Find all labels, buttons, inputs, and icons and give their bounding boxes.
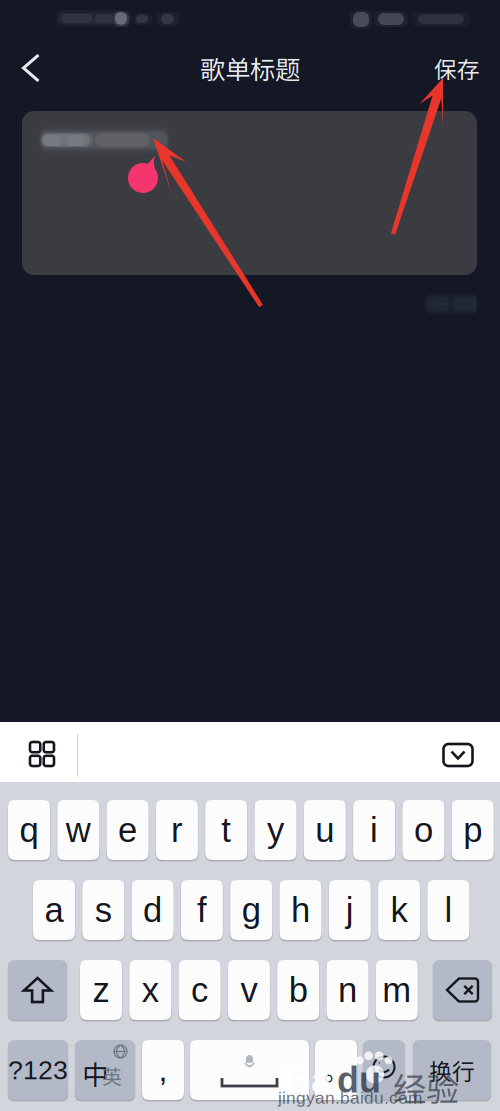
- staticText: v: [240, 971, 257, 1009]
- staticText: n: [338, 971, 357, 1009]
- button[interactable]: o: [402, 800, 444, 860]
- button[interactable]: x: [129, 960, 171, 1020]
- button[interactable]: Back: [0, 40, 62, 96]
- staticText: l: [444, 891, 452, 929]
- button[interactable]: e: [107, 800, 149, 860]
- button[interactable]: s: [82, 880, 124, 940]
- button[interactable]: u: [304, 800, 346, 860]
- button[interactable]: p: [452, 800, 494, 860]
- staticText: du: [337, 1060, 381, 1100]
- staticText: u: [315, 811, 334, 849]
- button[interactable]: y: [254, 800, 296, 860]
- button[interactable]: ,: [142, 1040, 184, 1100]
- button[interactable]: j: [329, 880, 371, 940]
- staticText: p: [463, 811, 482, 849]
- staticText: o: [414, 811, 433, 849]
- staticText: x: [142, 971, 159, 1009]
- staticText: q: [19, 811, 38, 849]
- button[interactable]: c: [179, 960, 221, 1020]
- button[interactable]: m: [376, 960, 418, 1020]
- staticText: k: [391, 891, 408, 929]
- button[interactable]: Keyboard layouts: [0, 722, 84, 782]
- staticText: ,: [158, 1052, 167, 1088]
- staticText: 中: [82, 1054, 109, 1093]
- staticText: ?123: [8, 1055, 68, 1085]
- button[interactable]: 保存: [414, 40, 500, 96]
- button[interactable]: h: [279, 880, 321, 940]
- button[interactable]: t: [205, 800, 247, 860]
- button[interactable]: i: [353, 800, 395, 860]
- button[interactable]: d: [132, 880, 174, 940]
- staticText: s: [95, 891, 112, 929]
- button[interactable]: l: [427, 880, 469, 940]
- staticText: 经验: [393, 1063, 459, 1111]
- staticText: j: [346, 891, 354, 929]
- button[interactable]: n: [326, 960, 368, 1020]
- staticText: t: [221, 811, 231, 849]
- button[interactable]: Dismiss keyboard: [416, 722, 500, 782]
- button[interactable]: b: [277, 960, 319, 1020]
- staticText: Bai: [285, 1060, 341, 1100]
- staticText: y: [267, 811, 284, 849]
- button[interactable]: a: [33, 880, 75, 940]
- staticText: w: [66, 811, 91, 849]
- button[interactable]: g: [230, 880, 272, 940]
- button[interactable]: Emoji: [363, 1040, 405, 1100]
- button[interactable]: 。: [315, 1040, 357, 1100]
- staticText: a: [44, 891, 63, 929]
- button[interactable]: f: [181, 880, 223, 940]
- button[interactable]: Switch language: [75, 1040, 135, 1100]
- staticText: 。: [324, 1053, 348, 1087]
- staticText: 换行: [429, 1054, 475, 1086]
- button[interactable]: z: [80, 960, 122, 1020]
- staticText: c: [191, 971, 208, 1009]
- staticText: jingyan.baidu.com: [278, 1088, 422, 1107]
- staticText: 英: [102, 1061, 122, 1090]
- staticText: d: [143, 891, 162, 929]
- staticText: h: [291, 891, 310, 929]
- button[interactable]: Shift: [8, 960, 67, 1020]
- staticText: b: [289, 971, 308, 1009]
- staticText: r: [171, 811, 183, 849]
- staticText: 保存: [434, 52, 480, 84]
- button[interactable]: q: [8, 800, 50, 860]
- staticText: e: [118, 811, 137, 849]
- staticText: g: [242, 891, 261, 929]
- button[interactable]: Delete: [433, 960, 492, 1020]
- staticText: z: [92, 971, 109, 1009]
- staticText: 歌单标题: [200, 50, 300, 86]
- button[interactable]: v: [228, 960, 270, 1020]
- staticText: f: [197, 891, 207, 929]
- staticText: i: [370, 811, 378, 849]
- button[interactable]: k: [378, 880, 420, 940]
- button[interactable]: ?123: [8, 1040, 68, 1100]
- button[interactable]: r: [156, 800, 198, 860]
- button[interactable]: 换行: [413, 1040, 491, 1100]
- button[interactable]: Space: [190, 1040, 309, 1100]
- staticText: m: [382, 971, 411, 1009]
- button[interactable]: w: [57, 800, 99, 860]
